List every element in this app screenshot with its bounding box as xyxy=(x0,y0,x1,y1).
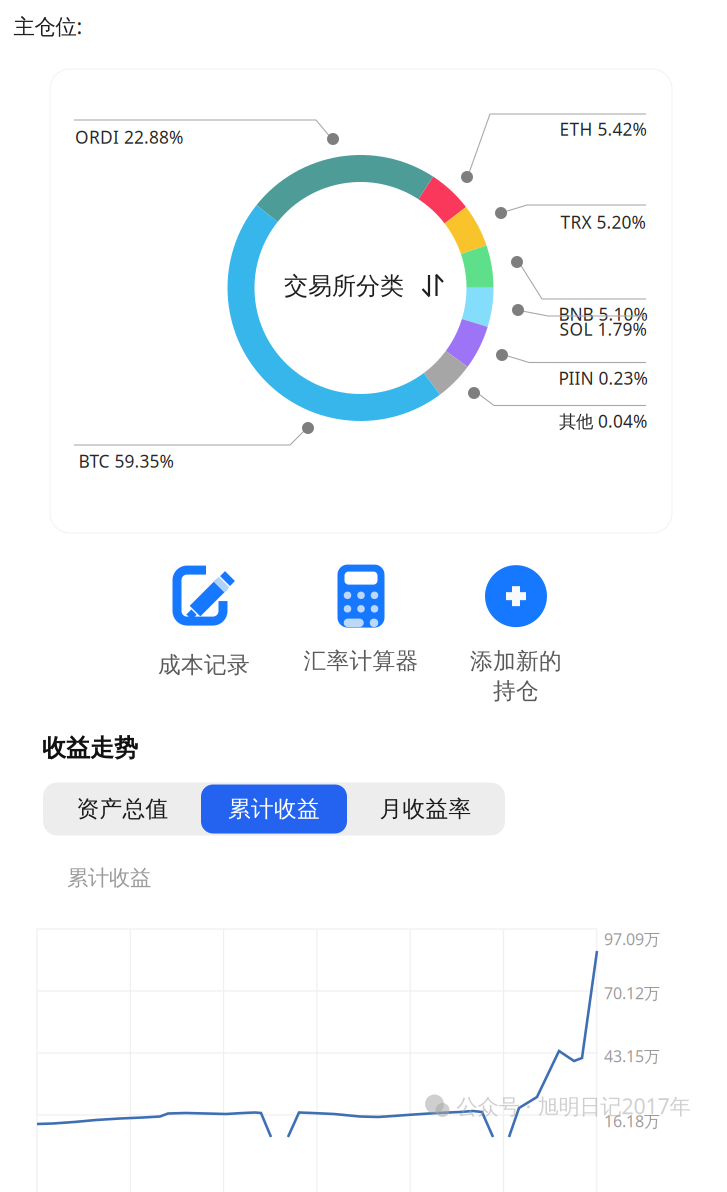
staticText: 持仓 xyxy=(493,677,539,705)
staticText: 累计收益 xyxy=(67,865,151,891)
staticText: 主仓位: xyxy=(13,12,82,40)
staticText: 收益走势 xyxy=(42,733,138,763)
button[interactable]: 成本记录 xyxy=(109,550,299,690)
staticText: 公众号 · 旭明日记2017年 xyxy=(456,1092,690,1120)
staticText: ORDI 22.88% xyxy=(75,125,183,148)
staticText: 累计收益 xyxy=(228,795,320,823)
staticText: 添加新的 xyxy=(470,647,562,675)
button[interactable]: 添加新的 xyxy=(421,546,611,716)
staticText: 月收益率 xyxy=(379,795,471,823)
button[interactable]: 资产总值 xyxy=(44,783,201,835)
staticText: BTC 59.35% xyxy=(78,449,173,472)
staticText: 汇率计算器 xyxy=(303,647,418,675)
staticText: ETH 5.42% xyxy=(559,117,646,140)
button[interactable]: 汇率计算器 xyxy=(266,546,456,686)
staticText: 97.09万 xyxy=(604,928,660,950)
staticText: PIIN 0.23% xyxy=(558,366,647,389)
button[interactable]: 累计收益 xyxy=(201,784,347,833)
staticText: 资产总值 xyxy=(76,795,168,823)
staticText: 70.12万 xyxy=(604,982,660,1004)
staticText: 成本记录 xyxy=(158,651,250,679)
staticText: 16.18万 xyxy=(604,1110,660,1132)
staticText: 交易所分类 xyxy=(284,271,404,301)
staticText: SOL 1.79% xyxy=(559,317,646,340)
button[interactable]: 月收益率 xyxy=(347,783,504,835)
staticText: BNB 5.10% xyxy=(558,302,647,325)
staticText: 其他 0.04% xyxy=(559,409,647,432)
staticText: 43.15万 xyxy=(604,1045,660,1067)
staticText: TRX 5.20% xyxy=(560,210,645,233)
